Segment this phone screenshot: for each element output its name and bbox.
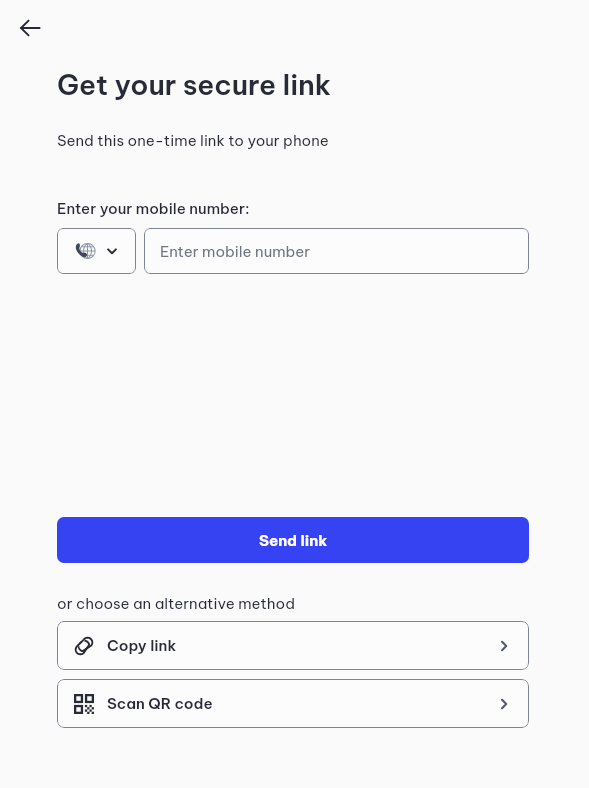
button[interactable]: Back	[14, 12, 46, 44]
staticText: Copy link	[107, 636, 177, 655]
staticText: Get your secure link	[57, 67, 332, 102]
staticText: Enter mobile number	[160, 242, 311, 261]
button[interactable]: Copy link	[57, 621, 529, 670]
button[interactable]: Select country code	[57, 228, 136, 274]
staticText: Scan QR code	[107, 694, 213, 713]
staticText: Send this one-time link to your phone	[57, 131, 329, 150]
staticText: Send link	[259, 531, 328, 550]
button[interactable]: Scan QR code	[57, 679, 529, 728]
staticText: or choose an alternative method	[57, 594, 295, 613]
staticText: Enter your mobile number:	[57, 199, 250, 218]
button[interactable]: Enter mobile number	[144, 228, 529, 274]
button[interactable]: Send link	[57, 517, 529, 563]
